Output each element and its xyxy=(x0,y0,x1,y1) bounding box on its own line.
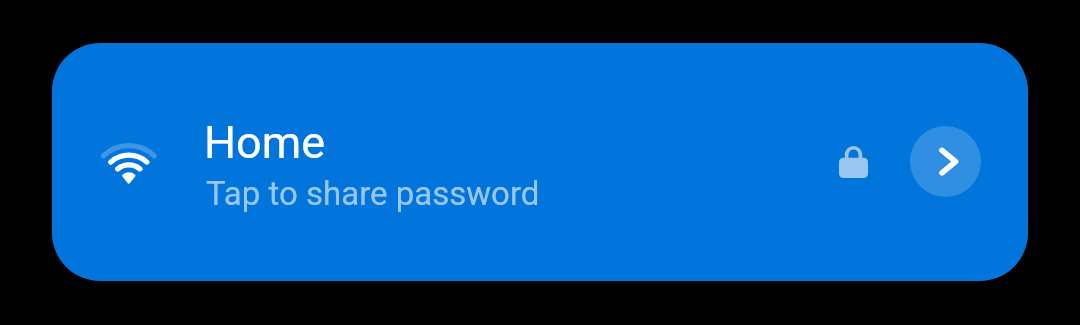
other: Wi-Fi signal full xyxy=(97,138,163,190)
other: Secured network xyxy=(839,145,868,179)
staticText: Tap to share password xyxy=(206,174,540,213)
staticText: Home xyxy=(204,116,326,169)
button[interactable]: Wi-Fi signal full xyxy=(52,43,1028,281)
button[interactable]: Open network details xyxy=(910,126,981,197)
